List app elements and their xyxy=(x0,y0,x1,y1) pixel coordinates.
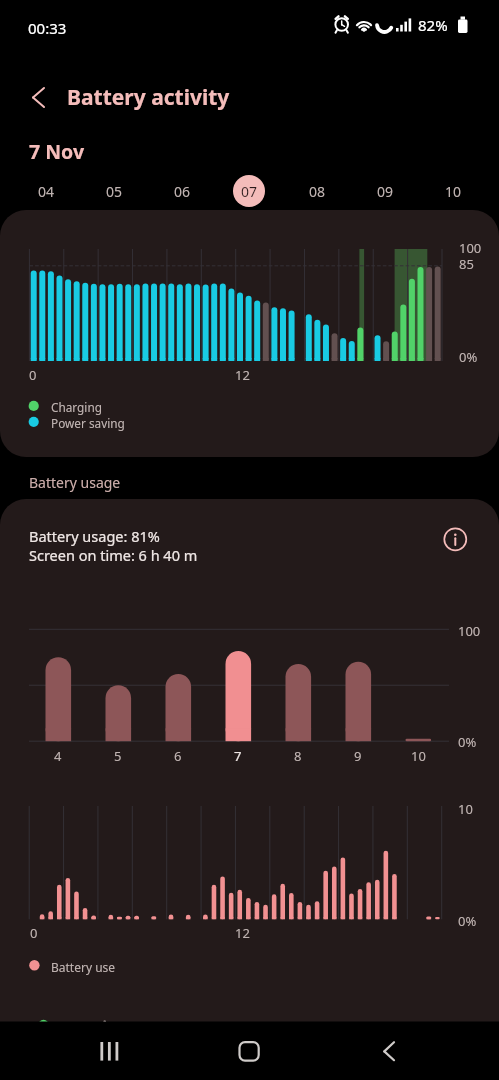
staticText: 06 xyxy=(174,182,191,201)
staticText: 05 xyxy=(106,182,123,201)
button[interactable] xyxy=(428,170,499,212)
staticText: 08 xyxy=(309,182,326,201)
staticText: 100 xyxy=(459,239,482,257)
staticText: 04 xyxy=(38,182,55,201)
staticText: Power saving xyxy=(51,415,125,431)
button[interactable] xyxy=(215,170,286,212)
staticText: 0% xyxy=(458,733,477,751)
staticText: 0 xyxy=(30,924,38,942)
staticText: 12 xyxy=(235,924,250,942)
staticText: 12 xyxy=(235,366,250,384)
button[interactable] xyxy=(144,170,215,212)
staticText: Battery use xyxy=(51,959,116,975)
staticText: Battery usage xyxy=(29,473,121,492)
staticText: 8 xyxy=(294,747,302,765)
staticText: 9 xyxy=(354,747,362,765)
staticText: 7 Nov xyxy=(29,138,85,165)
staticText: 6 xyxy=(174,747,182,765)
staticText: 0% xyxy=(458,912,477,930)
staticText: 7 xyxy=(234,747,242,765)
staticText: 85 xyxy=(459,255,474,273)
button[interactable] xyxy=(72,170,144,212)
staticText: 10 xyxy=(458,800,473,818)
button[interactable]: Battery usage info xyxy=(432,516,478,562)
staticText: 0 xyxy=(29,366,37,384)
staticText: 82% xyxy=(418,15,448,35)
staticText: 4 xyxy=(54,747,62,765)
staticText: Battery activity xyxy=(67,83,230,112)
button[interactable] xyxy=(286,170,357,212)
staticText: 10 xyxy=(411,747,426,765)
staticText: Charging xyxy=(51,399,102,415)
staticText: 100 xyxy=(458,622,481,640)
staticText: 10 xyxy=(445,182,462,201)
button[interactable]: Back xyxy=(18,78,58,118)
staticText: 09 xyxy=(377,182,394,201)
button[interactable] xyxy=(0,170,72,212)
staticText: Battery usage: 81% xyxy=(29,526,160,546)
staticText: 5 xyxy=(114,747,122,765)
staticText: 07 xyxy=(241,182,258,201)
staticText: 0% xyxy=(459,348,478,366)
button[interactable]: Back xyxy=(333,1024,499,1080)
button[interactable] xyxy=(357,170,428,212)
staticText: Screen on time: 6 h 40 m xyxy=(29,545,198,565)
staticText: 00:33 xyxy=(28,18,67,38)
button[interactable]: Home xyxy=(167,1024,333,1080)
button[interactable]: Recents xyxy=(0,1024,167,1080)
